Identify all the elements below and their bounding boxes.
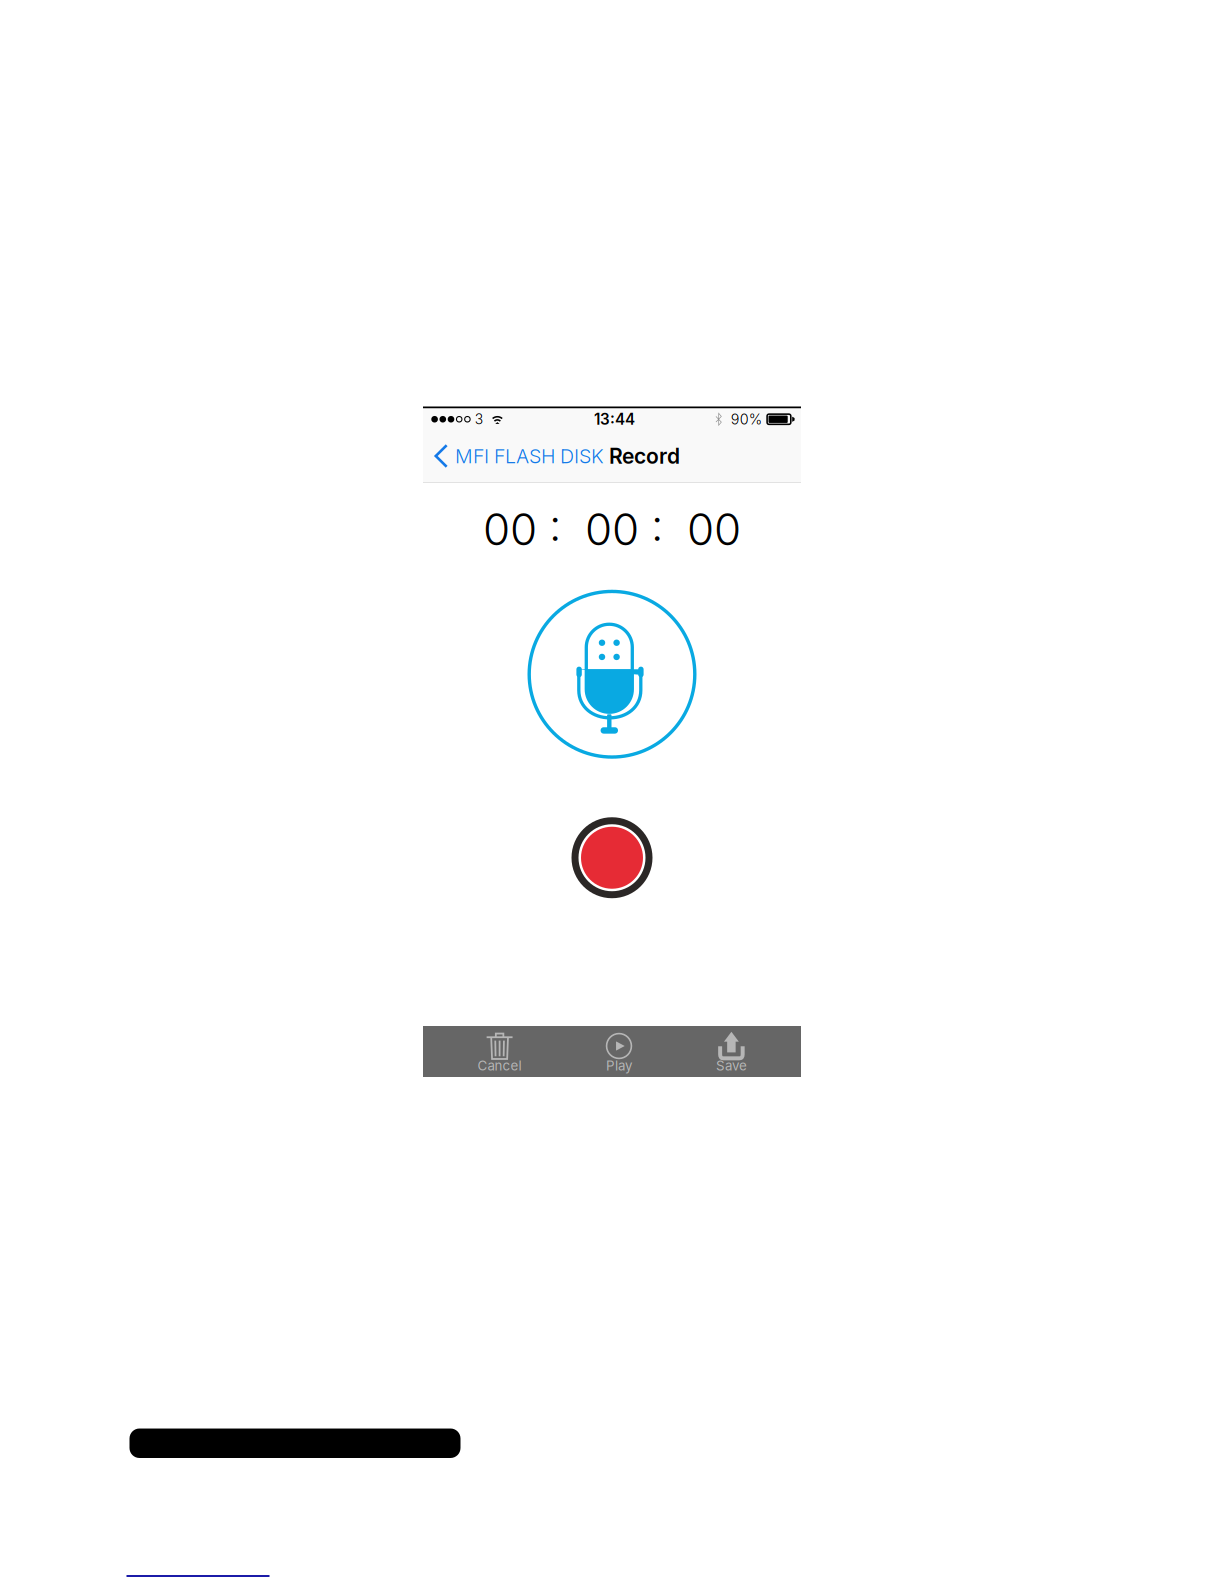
button[interactable]: MFI FLASH DISK [423, 433, 604, 478]
button[interactable]: Play [576, 1026, 662, 1077]
button[interactable]: Save [662, 1026, 801, 1077]
staticText: 90% [731, 410, 762, 428]
button[interactable]: Record [571, 817, 652, 898]
staticText: Save [716, 1057, 747, 1074]
staticText: Record [609, 443, 680, 469]
staticText: 13:44 [594, 410, 635, 428]
staticText: Play [606, 1057, 632, 1074]
button[interactable]: Microphone [527, 590, 696, 759]
staticText: 00 : 00 : 00 [483, 503, 741, 556]
button[interactable]: Cancel [423, 1026, 576, 1077]
staticText: 3 [475, 411, 483, 428]
staticText: Cancel [478, 1057, 522, 1074]
staticText: MFI FLASH DISK [455, 444, 604, 468]
